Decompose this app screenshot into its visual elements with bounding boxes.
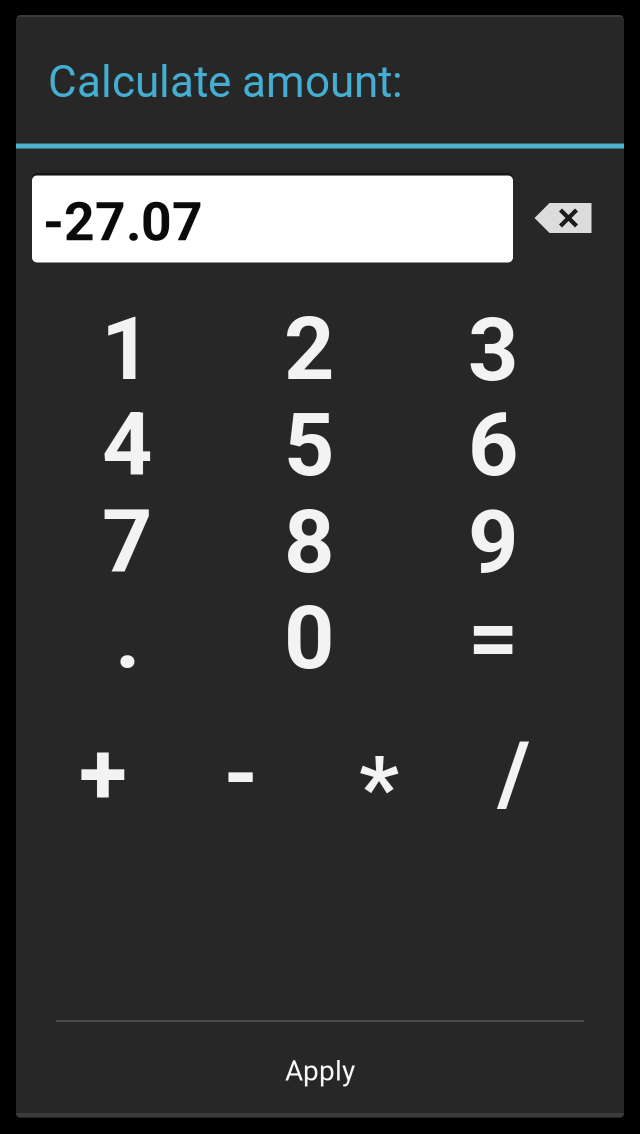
button[interactable]: 4 (52, 397, 202, 493)
staticText: Apply (285, 1055, 355, 1087)
button[interactable]: - (176, 719, 306, 829)
button[interactable]: 0 (234, 590, 384, 686)
staticText: 7 (102, 490, 152, 593)
button[interactable]: = (418, 590, 568, 686)
staticText: -27.07 (43, 191, 203, 253)
button[interactable]: / (449, 719, 579, 829)
staticText: 0 (284, 586, 334, 689)
staticText: 4 (102, 393, 152, 496)
button[interactable]: 9 (418, 494, 568, 590)
button[interactable]: Backspace (520, 174, 606, 262)
button[interactable]: . (53, 590, 203, 686)
staticText: 5 (284, 393, 334, 496)
button[interactable]: + (38, 719, 168, 829)
staticText: = (468, 586, 518, 689)
staticText: * (359, 736, 399, 839)
button[interactable]: 6 (418, 397, 568, 493)
staticText: 9 (468, 490, 518, 593)
button[interactable]: 1 (51, 301, 201, 397)
button[interactable]: * (314, 733, 444, 843)
staticText: . (115, 586, 141, 689)
staticText: / (497, 722, 530, 825)
staticText: 2 (284, 297, 334, 400)
button[interactable]: 5 (234, 397, 384, 493)
staticText: 3 (468, 298, 518, 401)
staticText: 6 (468, 393, 518, 496)
staticText: 1 (101, 297, 151, 400)
staticText: Calculate amount: (48, 56, 403, 108)
button[interactable]: 3 (418, 302, 568, 398)
staticText: - (223, 722, 258, 825)
button[interactable]: Apply (16, 1023, 624, 1119)
button[interactable]: 7 (52, 494, 202, 590)
button[interactable]: 8 (234, 494, 384, 590)
button[interactable]: 2 (234, 301, 384, 397)
staticText: + (79, 722, 127, 825)
staticText: 8 (284, 490, 334, 593)
